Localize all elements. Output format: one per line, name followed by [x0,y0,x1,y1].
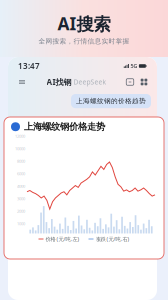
staticText: 1000 [17,221,25,226]
staticText: 8000 [17,158,25,164]
staticText: 2000 [17,208,25,214]
staticText: AI搜索 [57,12,110,35]
button[interactable]: Apps [139,77,149,87]
staticText: 13:47 [18,61,40,71]
staticText: 5G [130,62,137,70]
staticText: 6000 [17,171,25,176]
staticText: 上海螺纹钢价格走势 [24,121,105,132]
staticText: 全网搜索，行情信息实时掌握 [38,37,129,45]
staticText: 4000 [17,183,25,189]
staticText: AI找钢 [46,77,71,87]
button[interactable]: Conversations [125,77,135,87]
staticText: 10000 [15,146,25,151]
staticText: 3000 [17,196,25,201]
staticText: 12000 [15,133,25,139]
staticText: 涨跌 (元/吨, 右) [95,235,129,243]
staticText: 价格 (元/吨, 左) [45,235,79,243]
staticText: DeepSeek [73,78,106,86]
button[interactable]: Menu [16,76,28,88]
staticText: 上海螺纹钢的价格趋势 [76,97,146,105]
